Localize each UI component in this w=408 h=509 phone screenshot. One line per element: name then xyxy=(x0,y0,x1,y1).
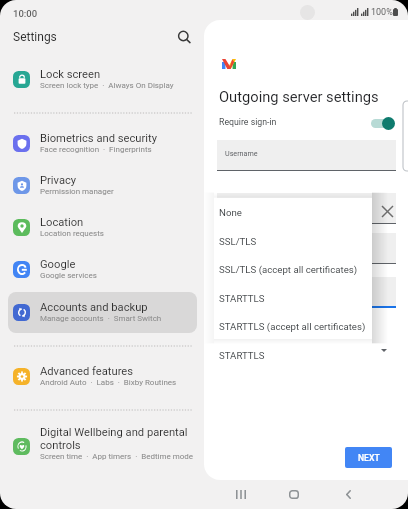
button[interactable] xyxy=(8,249,196,291)
button[interactable]: SSL/TLS xyxy=(214,227,372,256)
staticText: None xyxy=(219,207,242,218)
button[interactable] xyxy=(8,122,196,164)
staticText: Digital Wellbeing and parental xyxy=(40,426,188,439)
staticText: Accounts and backup xyxy=(40,301,148,314)
staticText: Google xyxy=(40,258,76,271)
staticText: Advanced features xyxy=(40,365,134,378)
button[interactable] xyxy=(8,207,196,249)
staticText: Screen time · App timers · Bedtime mode xyxy=(40,452,194,461)
button[interactable] xyxy=(8,165,196,207)
button[interactable]: STARTTLS (accept all certificates) xyxy=(214,312,372,341)
staticText: 10:00 xyxy=(13,8,38,19)
staticText: Manage accounts · Smart Switch xyxy=(40,314,162,323)
button[interactable] xyxy=(217,193,396,224)
staticText: STARTTLS xyxy=(219,350,265,361)
button[interactable]: SSL/TLS (accept all certificates) xyxy=(214,255,372,284)
staticText: 100% xyxy=(371,7,393,18)
staticText: Biometrics and security xyxy=(40,132,157,145)
staticText: Lock screen xyxy=(40,68,101,81)
staticText: Privacy xyxy=(40,174,77,187)
staticText: Google services xyxy=(40,271,97,280)
staticText: Username xyxy=(225,149,258,157)
staticText: Screen lock type · Always On Display xyxy=(40,81,174,90)
button[interactable]: None xyxy=(214,198,372,227)
button[interactable]: Home xyxy=(280,481,307,508)
staticText: Location xyxy=(40,216,84,229)
button[interactable]: Close xyxy=(376,200,399,223)
staticText: NEXT xyxy=(358,453,380,463)
button[interactable] xyxy=(217,233,396,264)
staticText: Require sign-in xyxy=(219,117,277,127)
staticText: SSL/TLS xyxy=(219,236,257,247)
button[interactable] xyxy=(217,277,396,308)
staticText: Android Auto · Labs · Bixby Routines xyxy=(40,378,177,387)
button[interactable] xyxy=(8,291,196,333)
staticText: controls xyxy=(40,439,81,452)
button[interactable]: Require sign-in toggle xyxy=(369,115,397,132)
button[interactable] xyxy=(8,59,196,101)
staticText: SSL/TLS (accept all certificates) xyxy=(219,264,358,275)
staticText: Settings xyxy=(13,30,57,44)
staticText: Permission manager xyxy=(40,187,114,196)
button[interactable]: Recent apps xyxy=(227,481,254,508)
staticText: STARTTLS xyxy=(219,293,265,304)
button[interactable]: STARTTLS xyxy=(214,284,372,313)
button[interactable]: Username xyxy=(217,140,396,171)
button[interactable]: NEXT xyxy=(345,447,392,468)
button[interactable] xyxy=(8,426,196,468)
button[interactable]: Back xyxy=(335,481,362,508)
staticText: STARTTLS (accept all certificates) xyxy=(219,321,366,332)
button[interactable] xyxy=(8,356,196,398)
staticText: Outgoing server settings xyxy=(219,88,379,105)
staticText: Location requests xyxy=(40,229,104,238)
button[interactable]: Search xyxy=(173,26,194,47)
staticText: Face recognition · Fingerprints xyxy=(40,145,152,154)
